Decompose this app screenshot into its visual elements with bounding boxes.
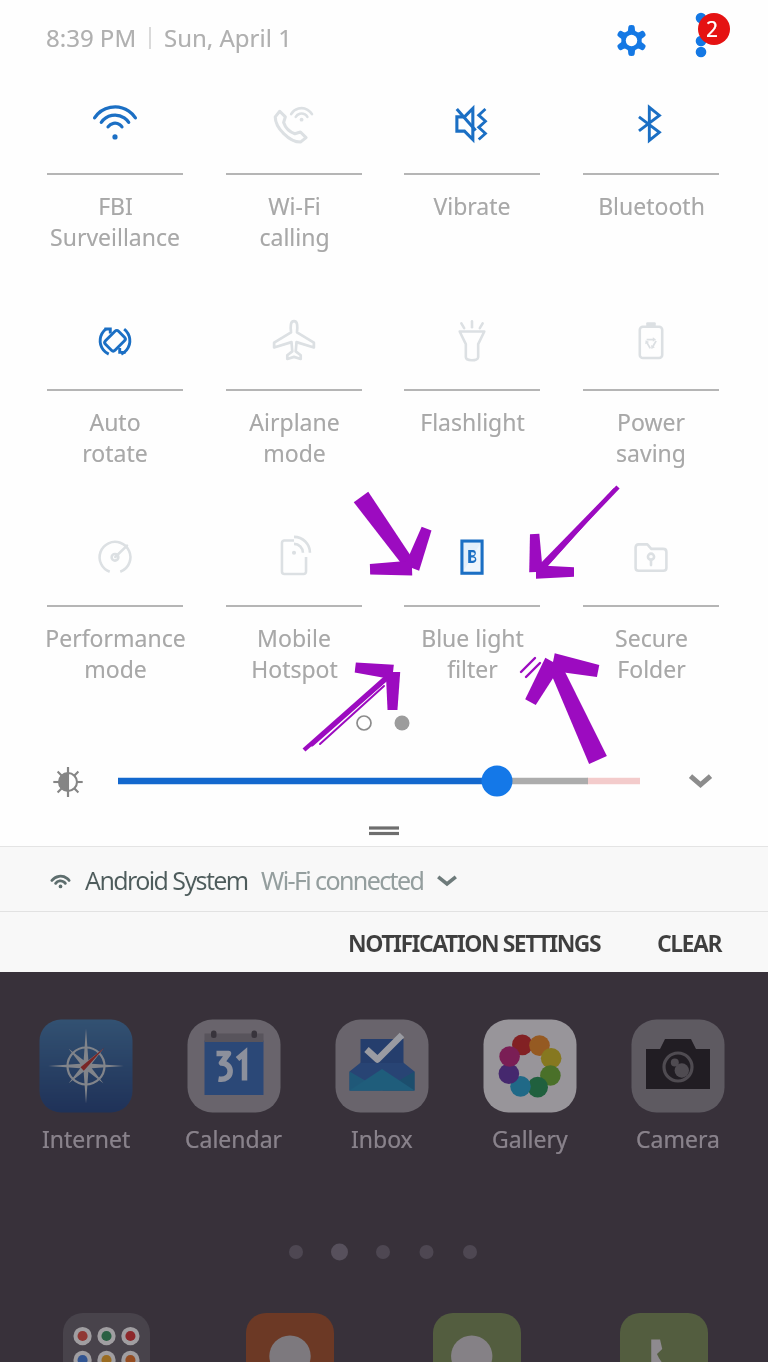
- staticText: 8:39 PM: [46, 21, 137, 54]
- button[interactable]: Mobile Hotspot: [205, 522, 383, 702]
- staticText: Surveillance: [50, 221, 180, 252]
- button[interactable]: Camera: [622, 1016, 734, 1160]
- staticText: NOTIFICATION SETTINGS: [348, 927, 601, 958]
- staticText: Wi-Fi connected: [261, 863, 424, 897]
- staticText: mode: [263, 437, 326, 468]
- button[interactable]: Google folder: [63, 1313, 150, 1362]
- staticText: Bluetooth: [598, 190, 705, 221]
- staticText: Internet: [42, 1123, 131, 1154]
- button[interactable]: Auto rotate: [26, 306, 204, 486]
- staticText: Inbox: [351, 1123, 413, 1154]
- button[interactable]: Airplane mode: [205, 306, 383, 486]
- button[interactable]: Settings: [616, 25, 647, 56]
- staticText: Sun, April 1: [164, 21, 292, 54]
- staticText: filter: [447, 653, 498, 684]
- staticText: Auto: [89, 406, 141, 437]
- button[interactable]: Power saving: [562, 306, 740, 486]
- button[interactable]: Android System: [0, 847, 768, 911]
- staticText: Blue light: [421, 622, 524, 653]
- staticText: Calendar: [185, 1123, 283, 1154]
- button[interactable]: Gallery: [474, 1016, 586, 1160]
- button[interactable]: Messages: [433, 1313, 521, 1362]
- button[interactable]: Contacts: [246, 1313, 334, 1362]
- staticText: Folder: [617, 653, 686, 684]
- staticText: Camera: [636, 1123, 720, 1154]
- staticText: Mobile: [257, 622, 331, 653]
- staticText: rotate: [82, 437, 148, 468]
- button[interactable]: Vibrate: [383, 90, 561, 270]
- staticText: mode: [84, 653, 147, 684]
- button[interactable]: Calendar: [178, 1016, 290, 1160]
- button[interactable]: Wi-Fi calling: [205, 90, 383, 270]
- button[interactable]: More options: [684, 8, 736, 60]
- staticText: Gallery: [492, 1123, 568, 1154]
- button[interactable]: CLEAR: [641, 915, 738, 970]
- button[interactable]: Flashlight: [383, 306, 561, 486]
- button[interactable]: Phone: [620, 1313, 708, 1362]
- button[interactable]: Inbox: [326, 1016, 438, 1160]
- staticText: Wi-Fi: [268, 190, 321, 221]
- button[interactable]: Internet: [30, 1016, 142, 1160]
- staticText: 2: [706, 15, 719, 44]
- button[interactable]: Performance mode: [26, 522, 204, 702]
- button[interactable]: FBI Surveillance: [26, 90, 204, 270]
- staticText: Performance: [45, 622, 186, 653]
- staticText: Vibrate: [433, 190, 511, 221]
- button[interactable]: NOTIFICATION SETTINGS: [332, 915, 617, 970]
- staticText: Airplane: [249, 406, 340, 437]
- button[interactable]: Expand quick settings: [688, 768, 713, 792]
- staticText: calling: [259, 221, 330, 252]
- staticText: FBI: [98, 190, 133, 221]
- button[interactable]: Bluetooth: [562, 90, 740, 270]
- staticText: Android System: [85, 863, 248, 897]
- button[interactable]: Secure Folder: [562, 522, 740, 702]
- staticText: saving: [616, 437, 686, 468]
- staticText: Power: [617, 406, 685, 437]
- staticText: Secure: [615, 622, 688, 653]
- staticText: Flashlight: [420, 406, 525, 437]
- staticText: Hotspot: [251, 653, 338, 684]
- button[interactable]: Blue light filter: [383, 522, 561, 702]
- staticText: CLEAR: [657, 927, 722, 958]
